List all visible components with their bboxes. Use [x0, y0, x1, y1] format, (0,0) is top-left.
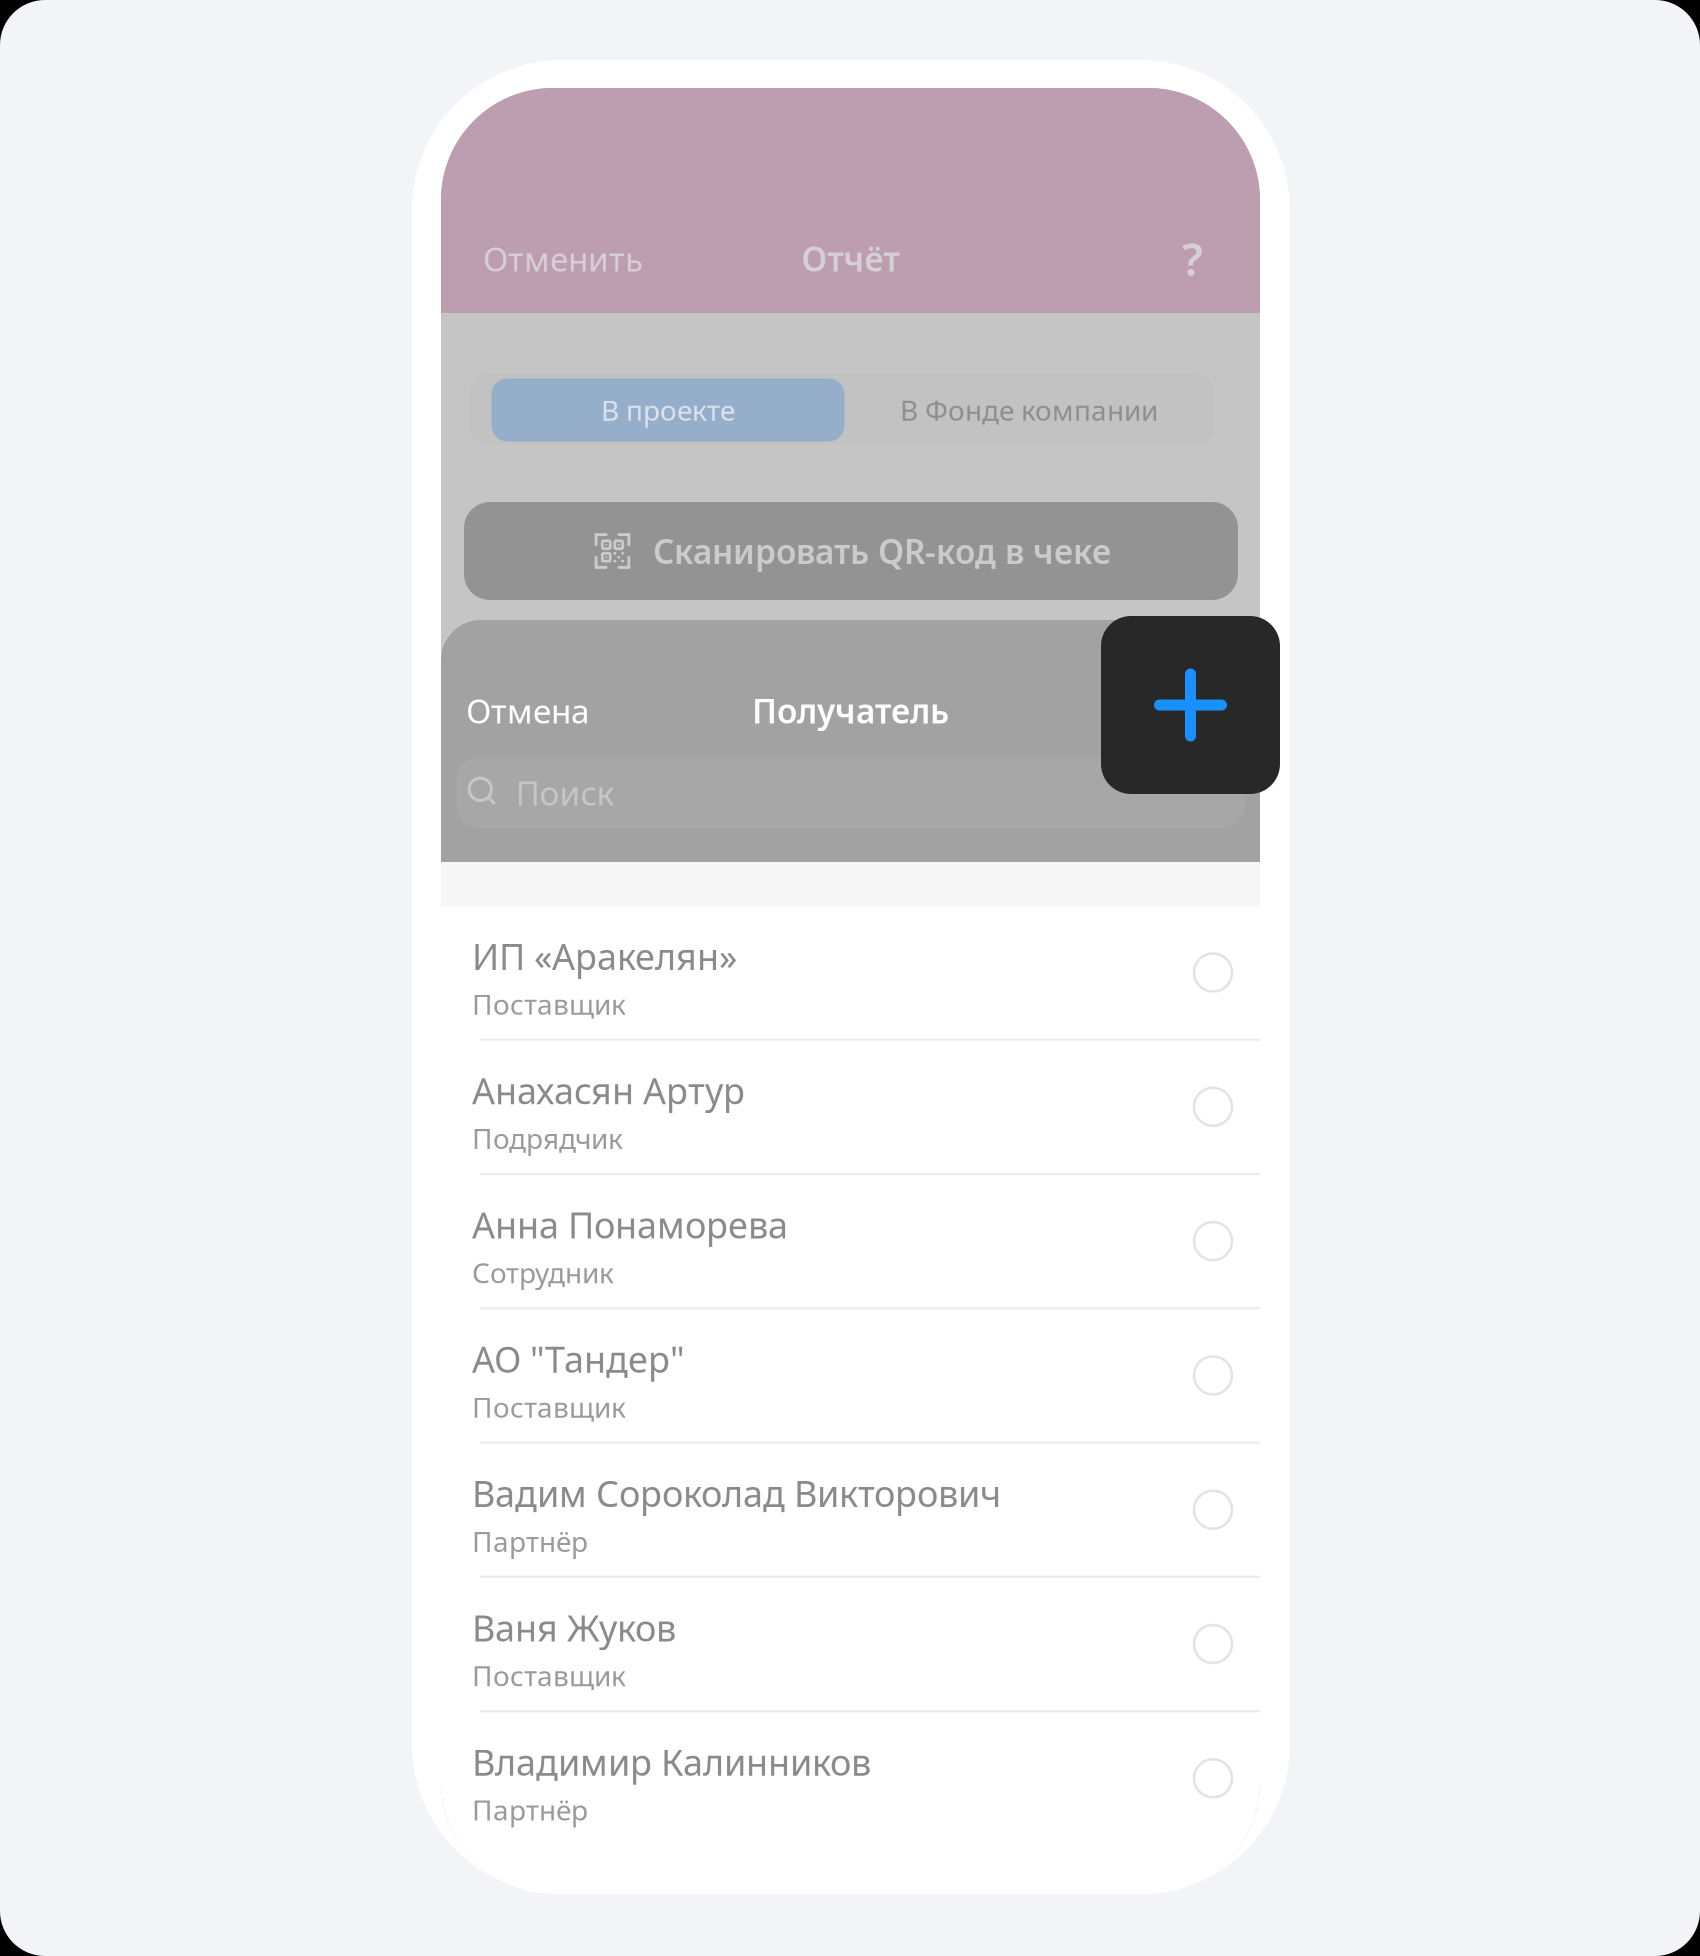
staticText: Владимир Калинников: [472, 1738, 871, 1786]
button[interactable]: В Фонде компании: [844, 378, 1213, 441]
staticText: В проекте: [601, 391, 735, 429]
staticText: Поиск: [515, 770, 614, 815]
staticText: Анахасян Артур: [472, 1066, 745, 1114]
button[interactable]: Анахасян Артур: [441, 1041, 1260, 1173]
staticText: Получатель: [752, 688, 949, 733]
staticText: Поставщик: [472, 1388, 626, 1425]
staticText: Вадим Сороколад Викторович: [472, 1469, 1001, 1517]
staticText: Ваня Жуков: [472, 1603, 676, 1651]
staticText: Подрядчик: [472, 1120, 623, 1157]
button[interactable]: Добавить: [1101, 616, 1280, 794]
button[interactable]: Справка: [1179, 233, 1203, 283]
staticText: Партнёр: [472, 1522, 588, 1560]
button[interactable]: Владимир Калинников: [441, 1712, 1260, 1844]
staticText: Отчёт: [801, 236, 899, 281]
button[interactable]: Вадим Сороколад Викторович: [441, 1444, 1260, 1576]
button[interactable]: Ваня Жуков: [441, 1578, 1260, 1710]
staticText: В Фонде компании: [900, 391, 1158, 429]
staticText: Отмена: [466, 688, 590, 733]
button[interactable]: Отменить: [483, 233, 643, 283]
button[interactable]: В проекте: [491, 378, 844, 441]
staticText: Анна Понаморева: [472, 1201, 788, 1248]
staticText: Партнёр: [472, 1791, 588, 1828]
staticText: Поставщик: [472, 985, 626, 1022]
button[interactable]: Отмена: [466, 688, 590, 732]
staticText: АО "Тандер": [472, 1335, 685, 1383]
staticText: Сканировать QR-код в чеке: [653, 529, 1111, 573]
button[interactable]: ИП «Аракелян»: [441, 906, 1260, 1038]
staticText: ИП «Аракелян»: [472, 932, 737, 980]
button[interactable]: АО "Тандер": [441, 1309, 1260, 1441]
staticText: ?: [1182, 228, 1203, 289]
button[interactable]: Сканировать QR-код в чеке: [464, 502, 1238, 600]
button[interactable]: Анна Понаморева: [441, 1175, 1260, 1307]
staticText: Сотрудник: [472, 1254, 614, 1291]
staticText: Отменить: [483, 236, 643, 281]
staticText: Поставщик: [472, 1657, 626, 1694]
